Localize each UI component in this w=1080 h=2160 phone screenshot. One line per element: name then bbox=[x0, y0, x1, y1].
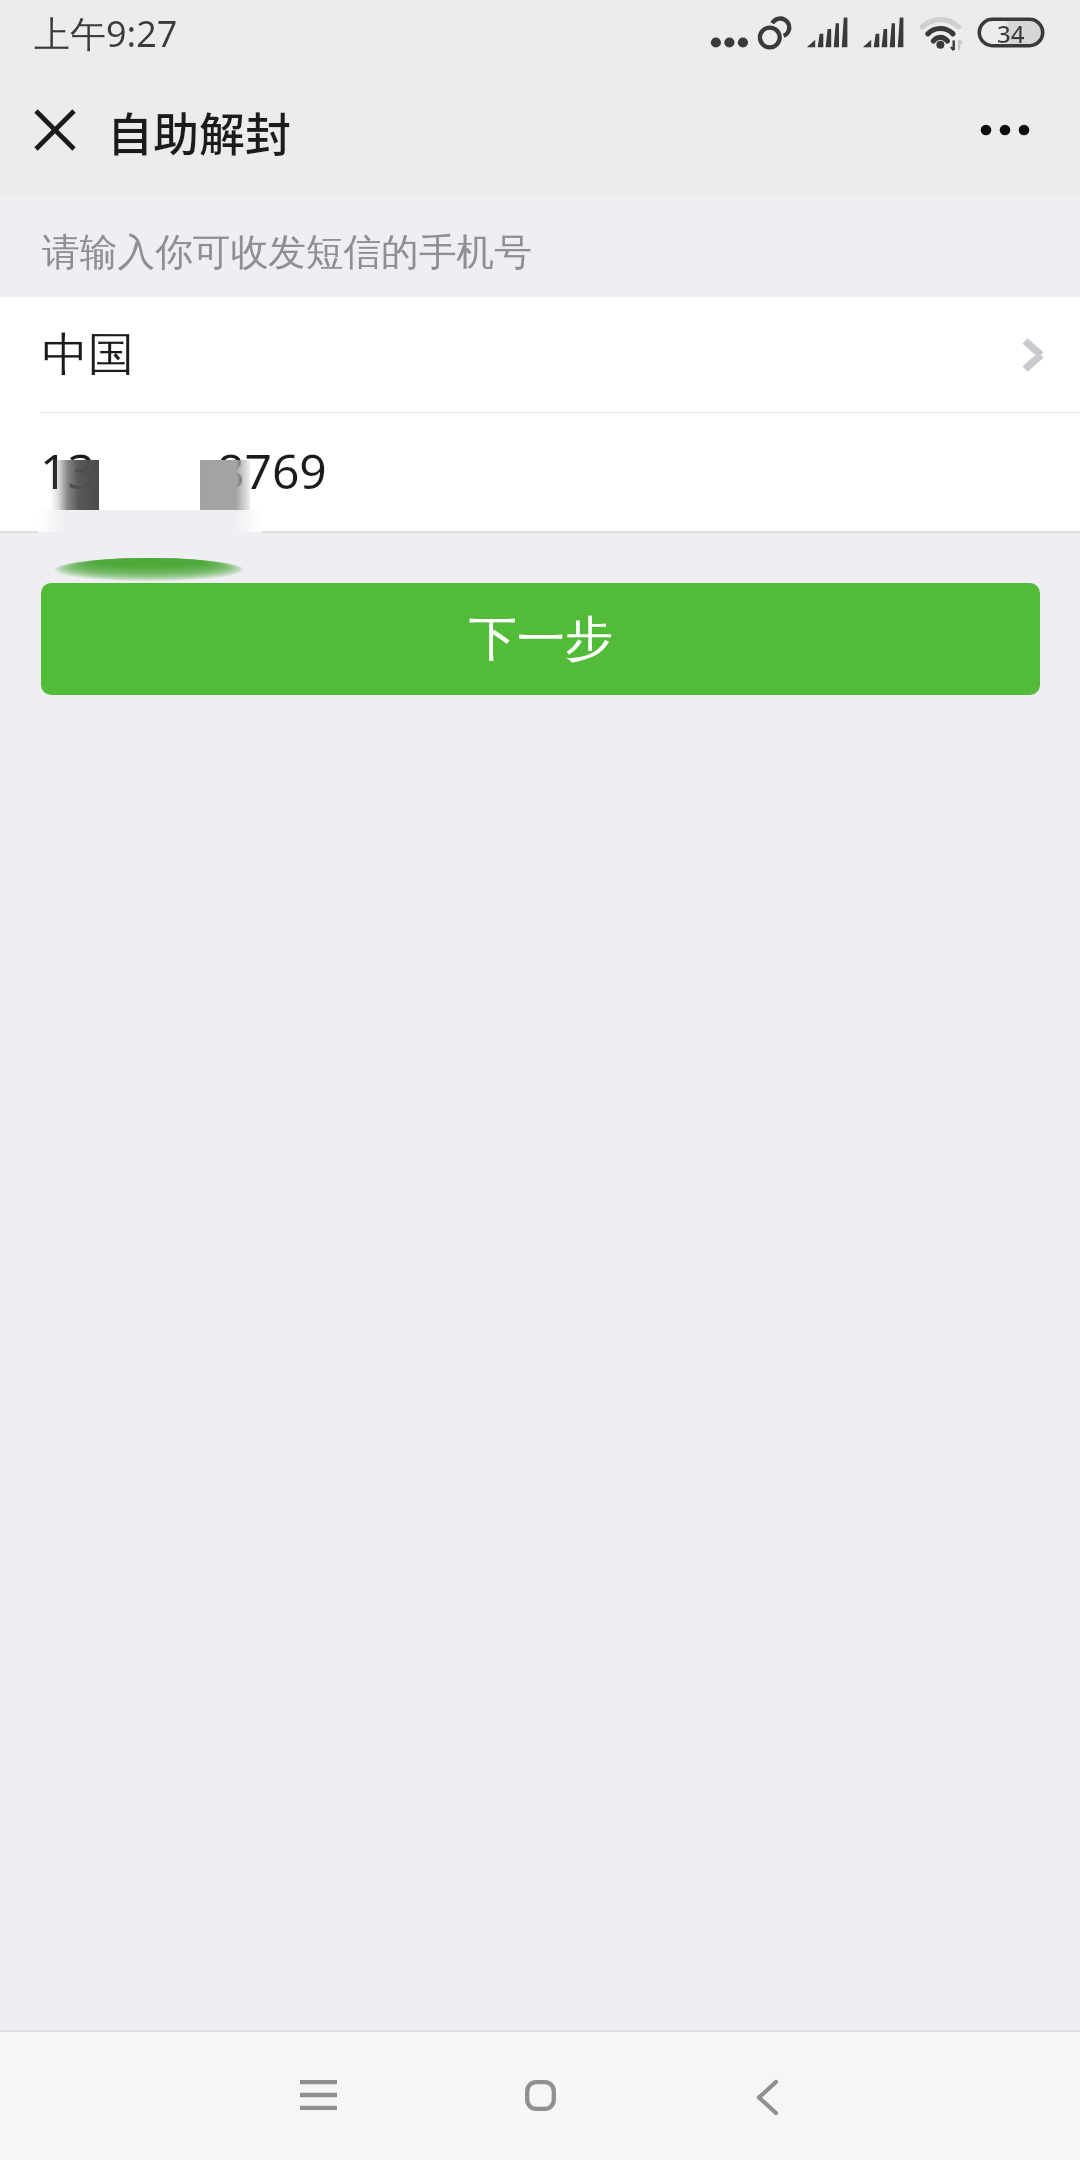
staticText: 请输入你可收发短信的手机号 bbox=[42, 229, 532, 276]
staticText: 8769 bbox=[217, 438, 327, 503]
button[interactable]: Home bbox=[500, 2032, 580, 2158]
button[interactable]: More options bbox=[966, 90, 1046, 170]
staticText: 自助解封 bbox=[107, 98, 291, 165]
button[interactable]: 下一步 bbox=[41, 583, 1040, 695]
staticText: 13 bbox=[40, 438, 95, 503]
button[interactable]: 中国 bbox=[0, 297, 1080, 413]
button[interactable]: 13 bbox=[0, 413, 1080, 532]
staticText: 下一步 bbox=[469, 609, 613, 669]
button[interactable]: Recent apps bbox=[278, 2032, 358, 2158]
button[interactable]: Close bbox=[15, 90, 94, 169]
staticText: 上午9:27 bbox=[34, 9, 178, 58]
button[interactable]: Back bbox=[727, 2034, 807, 2160]
staticText: 34 bbox=[997, 17, 1025, 48]
staticText: 中国 bbox=[42, 326, 134, 384]
